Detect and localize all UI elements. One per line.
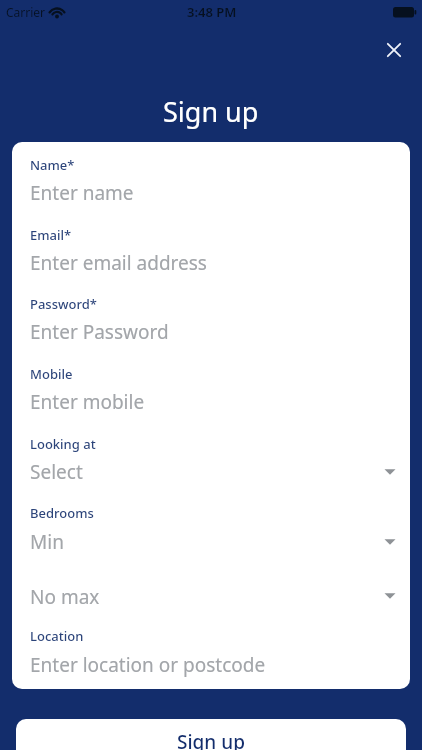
button[interactable]: Enter location or postcode — [12, 650, 410, 684]
staticText: Carrier — [6, 4, 46, 20]
staticText: Looking at — [30, 435, 96, 453]
button[interactable]: Min — [12, 527, 410, 561]
staticText: Sign up — [163, 93, 259, 130]
staticText: Email* — [30, 226, 72, 244]
staticText: Enter name — [30, 180, 134, 206]
staticText: Sign up — [177, 729, 245, 750]
button[interactable]: Enter name — [12, 178, 410, 212]
staticText: Name* — [30, 156, 75, 174]
staticText: Enter location or postcode — [30, 652, 266, 678]
staticText: Password* — [30, 295, 97, 313]
staticText: Mobile — [30, 365, 73, 383]
button[interactable]: Enter mobile — [12, 387, 410, 421]
button[interactable]: Enter email address — [12, 248, 410, 282]
staticText: 3:48 PM — [187, 3, 237, 21]
staticText: No max — [30, 584, 100, 610]
staticText: Bedrooms — [30, 504, 94, 522]
staticText: Min — [30, 529, 64, 555]
button[interactable]: Select — [12, 457, 410, 491]
button[interactable]: Enter Password — [12, 317, 410, 351]
button[interactable] — [378, 34, 410, 66]
staticText: Enter Password — [30, 319, 169, 345]
button[interactable]: No max — [12, 582, 410, 616]
staticText: Enter mobile — [30, 389, 145, 415]
staticText: Select — [30, 459, 83, 485]
button[interactable]: Sign up — [16, 719, 406, 750]
staticText: Location — [30, 627, 84, 645]
staticText: Enter email address — [30, 250, 207, 276]
